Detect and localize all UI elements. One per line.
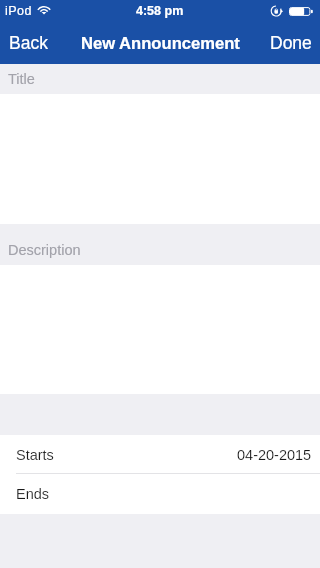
button[interactable]: Description <box>0 224 320 265</box>
button[interactable]: Done <box>258 22 320 64</box>
button[interactable]: Back <box>0 22 60 64</box>
staticText: 4:58 pm <box>136 4 184 18</box>
staticText: Title <box>8 71 35 87</box>
staticText: Ends <box>16 486 50 502</box>
button[interactable]: Ends <box>0 474 320 514</box>
button[interactable]: Starts <box>0 435 320 474</box>
other: Rotation lock <box>271 4 283 18</box>
staticText: Description <box>8 242 81 258</box>
staticText: New Announcement <box>81 34 240 53</box>
staticText: Back <box>9 33 48 53</box>
staticText: iPod <box>5 4 32 18</box>
button[interactable]: Title <box>0 64 320 94</box>
staticText: Done <box>270 33 312 53</box>
staticText: 04-20-2015 <box>237 447 312 463</box>
staticText: Starts <box>16 447 54 463</box>
